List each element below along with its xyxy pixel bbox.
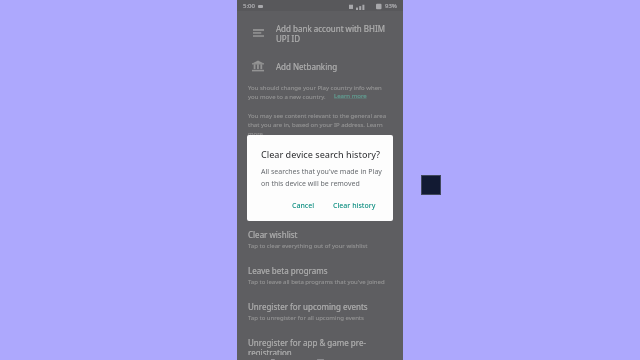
staticText: All searches that you've made in Play on… bbox=[261, 167, 383, 188]
button[interactable]: Cancel bbox=[285, 197, 322, 215]
staticText: You should change your Play country info… bbox=[248, 84, 392, 101]
staticText: Tap to unregister for all upcoming event… bbox=[248, 314, 364, 322]
staticText: 5:00 bbox=[243, 2, 255, 10]
staticText: Clear device search history? bbox=[261, 148, 381, 160]
staticText: Leave beta programs bbox=[248, 265, 328, 276]
staticText: Add bank account with BHIM UPI ID bbox=[276, 23, 392, 44]
staticText: Tap to leave all beta programs that you'… bbox=[248, 278, 385, 286]
staticText: You may see content relevant to the gene… bbox=[248, 112, 392, 138]
staticText: Clear wishlist bbox=[248, 229, 298, 240]
staticText: Unregister for upcoming events bbox=[248, 301, 368, 312]
staticText: 93% bbox=[385, 2, 397, 10]
button[interactable]: Clear history bbox=[326, 197, 383, 215]
staticText: Tap to clear everything out of your wish… bbox=[248, 242, 368, 250]
button[interactable]: Add bank account with BHIM UPI ID bbox=[237, 15, 403, 52]
staticText: Add Netbanking bbox=[276, 61, 338, 72]
button[interactable]: Add Netbanking bbox=[237, 52, 403, 80]
button[interactable]: Clear wishlist bbox=[237, 224, 403, 255]
staticText: Unregister for app & game pre-registrati… bbox=[248, 337, 392, 355]
button[interactable]: Leave beta programs bbox=[237, 260, 403, 291]
staticText: Learn more bbox=[334, 92, 367, 100]
staticText: Cancel bbox=[292, 201, 315, 211]
button[interactable]: Unregister for upcoming events bbox=[237, 296, 403, 327]
button[interactable]: Unregister for app & game pre-registrati… bbox=[237, 332, 403, 360]
staticText: Clear history bbox=[333, 201, 376, 211]
